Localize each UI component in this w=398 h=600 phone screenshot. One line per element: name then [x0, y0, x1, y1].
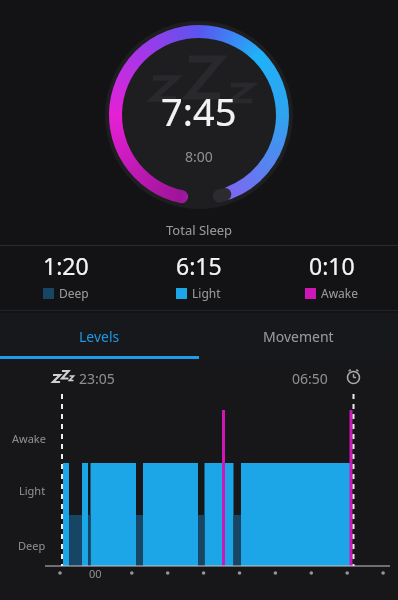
staticText: Deep [59, 285, 89, 301]
staticText: Levels [79, 327, 120, 346]
staticText: 06:50 [292, 369, 328, 388]
staticText: 0:10 [309, 250, 355, 281]
staticText: 00 [89, 566, 102, 581]
staticText: Light [19, 483, 46, 498]
staticText: Light [192, 285, 221, 301]
staticText: 7:45 [161, 85, 237, 137]
staticText: Total Sleep [166, 221, 233, 239]
staticText: 8:00 [185, 147, 213, 166]
staticText: 1:20 [43, 250, 89, 281]
staticText: Awake [321, 285, 359, 301]
button[interactable]: Levels [0, 313, 199, 359]
staticText: Awake [12, 431, 46, 446]
staticText: 6:15 [176, 250, 222, 281]
button[interactable]: Movement [199, 313, 398, 359]
button[interactable]: 1:20 [0, 250, 132, 301]
staticText: 23:05 [79, 369, 115, 388]
staticText: Deep [18, 538, 46, 553]
button[interactable]: 6:15 [132, 250, 265, 301]
button[interactable]: 0:10 [265, 250, 398, 301]
staticText: Movement [263, 327, 334, 346]
